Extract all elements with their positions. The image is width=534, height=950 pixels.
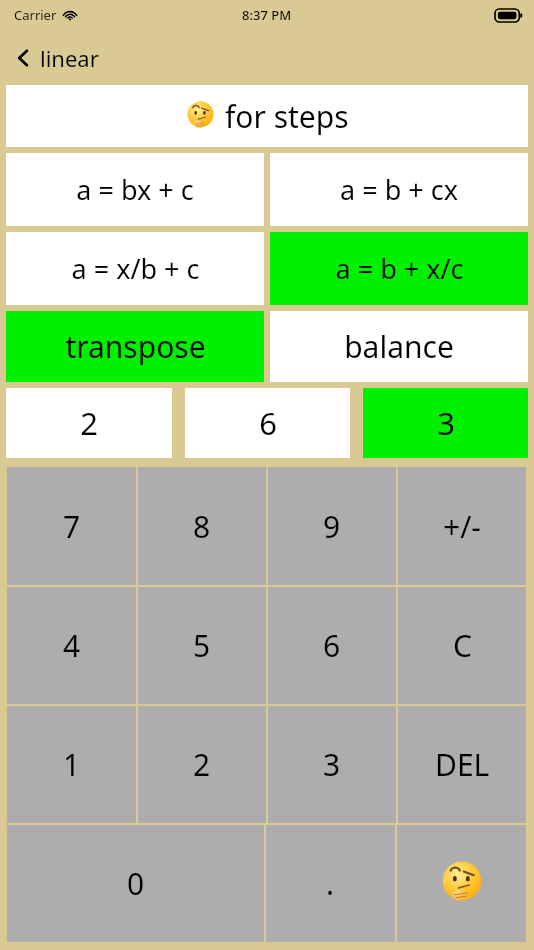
button[interactable]: 2	[138, 706, 266, 823]
staticText: 3	[323, 744, 341, 785]
staticText: for steps	[225, 96, 349, 137]
other: Back	[12, 47, 34, 69]
button[interactable]: a = x/b + c	[6, 232, 264, 305]
button[interactable]: 2	[6, 388, 172, 458]
button[interactable]: .	[266, 825, 395, 942]
button[interactable]: 6	[185, 388, 350, 458]
staticText: Carrier	[14, 6, 57, 24]
button[interactable]: Back	[12, 43, 99, 73]
staticText: 6	[259, 402, 277, 444]
button[interactable]: 6	[268, 587, 396, 704]
staticText: DEL	[435, 744, 490, 785]
staticText: 9	[323, 506, 341, 547]
button[interactable]: 3	[268, 706, 396, 823]
staticText: a = b + cx	[340, 171, 458, 208]
staticText: 3	[437, 402, 455, 444]
button[interactable]: 3	[363, 388, 528, 458]
staticText: a = x/b + c	[71, 250, 200, 287]
staticText: 6	[323, 625, 341, 666]
button[interactable]: 8	[138, 467, 266, 585]
button[interactable]: transpose	[6, 311, 264, 382]
staticText: 2	[80, 402, 98, 444]
staticText: 4	[63, 625, 81, 666]
button[interactable]: 5	[138, 587, 266, 704]
button[interactable]: 1	[7, 706, 136, 823]
staticText: 0	[127, 863, 145, 904]
staticText: a = b + x/c	[335, 250, 464, 287]
staticText: 7	[63, 506, 81, 547]
button[interactable]: for steps	[6, 85, 528, 147]
button[interactable]: 9	[268, 467, 396, 585]
staticText: 8:37 PM	[242, 6, 292, 24]
staticText: transpose	[65, 326, 206, 367]
staticText: 5	[193, 625, 211, 666]
button[interactable]: a = b + x/c	[270, 232, 528, 305]
button[interactable]: 0	[7, 825, 264, 942]
staticText: C	[453, 625, 472, 666]
button[interactable]: a = b + cx	[270, 153, 528, 226]
button[interactable]: 7	[7, 467, 136, 585]
staticText: .	[326, 863, 335, 904]
staticText: linear	[40, 43, 99, 73]
staticText: 1	[63, 744, 81, 785]
staticText: +/-	[443, 506, 481, 547]
staticText: 2	[193, 744, 211, 785]
staticText: a = bx + c	[76, 171, 194, 208]
button[interactable]: +/-	[398, 467, 526, 585]
button[interactable]: Show steps	[397, 825, 526, 942]
button[interactable]: DEL	[398, 706, 526, 823]
button[interactable]: a = bx + c	[6, 153, 264, 226]
button[interactable]: balance	[270, 311, 528, 382]
staticText: balance	[344, 326, 454, 367]
staticText: 8	[193, 506, 211, 547]
button[interactable]: C	[398, 587, 526, 704]
button[interactable]: 4	[7, 587, 136, 704]
